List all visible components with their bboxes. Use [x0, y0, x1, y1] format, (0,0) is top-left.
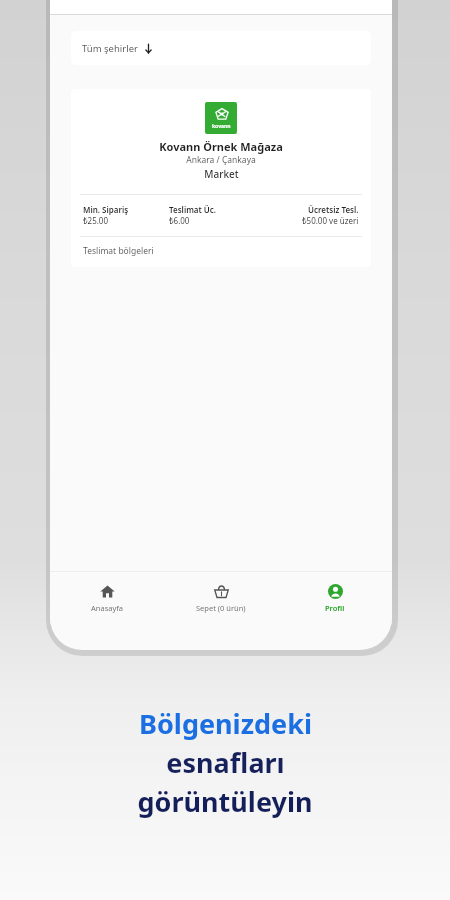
staticText: Min. Sipariş — [83, 204, 129, 215]
staticText: kovann — [212, 123, 231, 130]
staticText: Teslimat bölgeleri — [83, 245, 154, 257]
button[interactable]: Teslimat bölgeleri — [71, 237, 371, 265]
button[interactable]: kovann — [71, 89, 371, 267]
staticText: Tüm şehirler — [82, 42, 138, 55]
button[interactable]: Anasayfa — [50, 572, 164, 624]
staticText: görüntüleyin — [137, 783, 313, 820]
staticText: Ankara / Çankaya — [186, 154, 256, 166]
staticText: ₺50.00 ve üzeri — [302, 215, 359, 226]
button[interactable]: Tüm şehirler — [71, 31, 371, 65]
button[interactable]: Profil — [278, 572, 392, 624]
staticText: Anasayfa — [91, 603, 124, 613]
button[interactable]: Sepet (0 ürün) — [164, 572, 278, 624]
staticText: Kovann Örnek Mağaza — [159, 139, 283, 154]
staticText: Teslimat Üc. — [169, 204, 217, 215]
staticText: Market — [204, 167, 239, 181]
staticText: Sepet (0 ürün) — [196, 603, 246, 613]
staticText: ₺6.00 — [169, 215, 190, 226]
staticText: Profil — [325, 603, 345, 613]
staticText: ₺25.00 — [83, 215, 109, 226]
staticText: Bölgenizdeki — [139, 705, 312, 742]
staticText: esnafları — [166, 744, 285, 781]
staticText: Ücretsiz Tesl. — [308, 204, 359, 215]
